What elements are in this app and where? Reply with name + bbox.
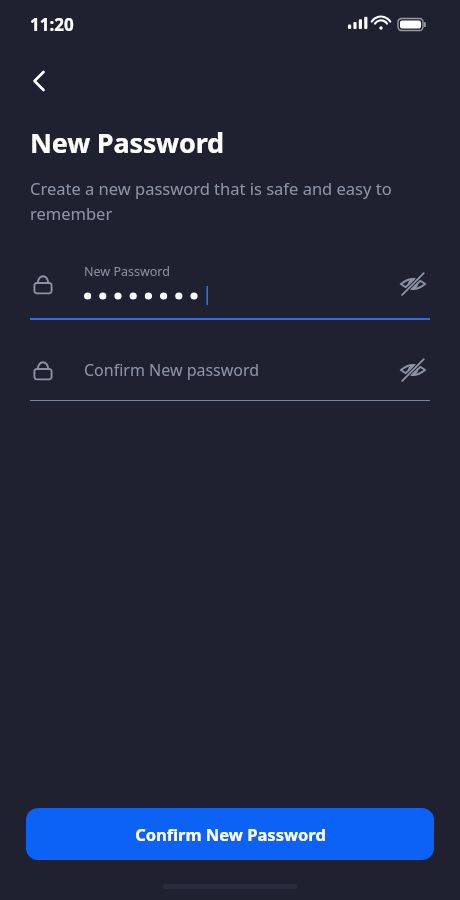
staticText: Confirm New password [84, 359, 260, 381]
button[interactable]: Back [18, 60, 60, 102]
button[interactable]: Confirm New password [30, 344, 430, 401]
button[interactable]: Show confirm password [396, 353, 430, 387]
button[interactable]: Confirm New Password [26, 808, 434, 860]
staticText: Create a new password that is safe and e… [30, 177, 430, 225]
button[interactable]: Show password [396, 267, 430, 301]
staticText: New Password [30, 124, 224, 161]
button[interactable]: New Password [30, 252, 430, 320]
staticText: New Password [84, 263, 170, 280]
staticText: 11:20 [30, 13, 74, 36]
staticText: Confirm New Password [135, 823, 326, 845]
